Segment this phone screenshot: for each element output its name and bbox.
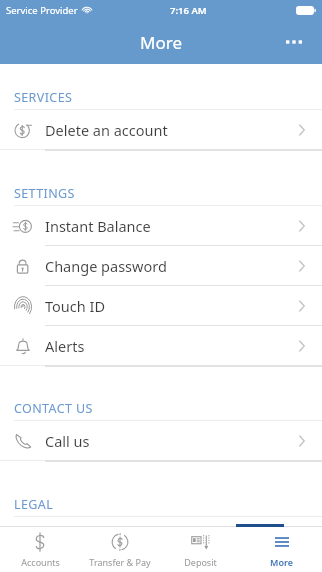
button[interactable]: Alerts [0, 326, 322, 365]
staticText: More [270, 556, 293, 568]
button[interactable]: Instant Balance [0, 206, 322, 245]
button[interactable]: Delete an account [0, 110, 322, 149]
button[interactable]: Deposit [160, 527, 241, 572]
staticText: Touch ID [45, 296, 105, 316]
button[interactable]: Touch ID [0, 286, 322, 325]
staticText: Accounts [21, 556, 60, 568]
staticText: LEGAL [14, 496, 54, 513]
staticText: SETTINGS [14, 185, 75, 202]
button[interactable]: Call us [0, 421, 322, 460]
button[interactable]: Change password [0, 246, 322, 285]
staticText: Alerts [45, 336, 85, 356]
staticText: Instant Balance [45, 216, 151, 236]
staticText: Deposit [184, 556, 217, 568]
staticText: Change password [45, 256, 167, 276]
button[interactable]: More options [278, 26, 310, 58]
staticText: Service Provider [6, 4, 78, 17]
staticText: 7:16 AM [170, 4, 207, 17]
button[interactable]: More [241, 527, 322, 572]
staticText: CONTACT US [14, 400, 93, 417]
staticText: SERVICES [14, 89, 73, 106]
staticText: More [140, 31, 182, 54]
button[interactable]: Accounts [0, 527, 80, 572]
staticText: Delete an account [45, 120, 168, 140]
staticText: Transfer & Pay [89, 556, 151, 568]
button[interactable]: Transfer & Pay [80, 527, 160, 572]
staticText: Call us [45, 431, 90, 451]
